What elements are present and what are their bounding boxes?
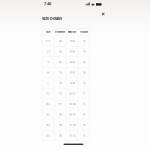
staticText: 44 bbox=[83, 103, 85, 105]
staticText: 102-106 bbox=[68, 103, 75, 105]
staticText: 5XL bbox=[46, 134, 50, 137]
staticText: 90-94 bbox=[69, 71, 74, 74]
staticText: 50 bbox=[83, 134, 85, 137]
staticText: 116-122 bbox=[68, 134, 75, 137]
staticText: 170 bbox=[58, 71, 61, 74]
staticText: 42 bbox=[83, 92, 85, 95]
staticText: Diameter bbox=[55, 31, 65, 33]
staticText: XL bbox=[46, 92, 49, 95]
staticText: 180 bbox=[58, 113, 61, 116]
staticText: 4XL bbox=[46, 124, 50, 126]
staticText: 170 bbox=[58, 82, 61, 84]
staticText: 165 bbox=[58, 50, 61, 53]
staticText: 175 bbox=[58, 92, 61, 95]
staticText: 78-82 bbox=[69, 40, 74, 42]
staticText: M bbox=[47, 71, 49, 74]
staticText: Bust/cm bbox=[68, 31, 76, 33]
staticText: 165 bbox=[58, 61, 61, 63]
staticText: 86-90 bbox=[69, 61, 74, 63]
staticText: 38 bbox=[83, 71, 85, 74]
staticText: 36 bbox=[83, 61, 85, 63]
staticText: 2XL bbox=[46, 103, 50, 105]
staticText: 82-86 bbox=[69, 50, 74, 53]
staticText: Hip/cm bbox=[80, 31, 88, 33]
staticText: 46 bbox=[83, 113, 85, 116]
staticText: 48 bbox=[83, 124, 85, 126]
staticText: XXS bbox=[45, 40, 50, 42]
staticText: 110-116 bbox=[68, 124, 75, 126]
staticText: Size bbox=[46, 31, 50, 33]
staticText: 175 bbox=[58, 103, 61, 105]
staticText: 160 bbox=[58, 40, 61, 42]
staticText: 40 bbox=[83, 82, 85, 84]
staticText: 34 bbox=[83, 50, 85, 53]
staticText: 185 bbox=[58, 134, 61, 137]
staticText: 106-110 bbox=[68, 113, 75, 116]
staticText: 94-98 bbox=[69, 82, 74, 84]
staticText: 32 bbox=[83, 40, 85, 42]
staticText: XS bbox=[46, 50, 49, 53]
staticText: 98-102 bbox=[69, 92, 75, 95]
staticText: 7:46 bbox=[44, 2, 51, 6]
staticText: 3XL bbox=[46, 113, 50, 116]
staticText: 180 bbox=[58, 124, 61, 126]
button[interactable]: Close bbox=[100, 10, 107, 17]
staticText: Size Details bbox=[42, 16, 62, 21]
